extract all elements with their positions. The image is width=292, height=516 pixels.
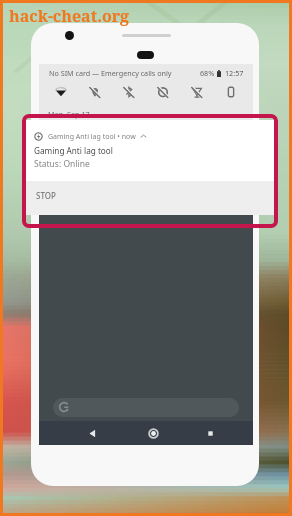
button[interactable]: Auto rotate <box>219 84 243 100</box>
button[interactable]: Google search <box>53 398 239 417</box>
button[interactable]: Do not disturb <box>151 84 175 100</box>
staticText: STOP <box>36 190 56 201</box>
button[interactable]: Home <box>140 421 166 445</box>
staticText: Mon, Sep 17 <box>48 109 90 119</box>
button[interactable]: Cast off <box>185 84 209 100</box>
staticText: No SIM card — Emergency calls only <box>49 68 172 78</box>
staticText: Gaming Anti lag tool <box>34 145 113 156</box>
staticText: Status: Online <box>34 158 90 170</box>
staticText: hack-cheat.org <box>9 5 130 27</box>
button[interactable]: Recents <box>197 421 223 445</box>
button[interactable]: Bluetooth off <box>117 84 141 100</box>
staticText: Gaming Anti lag tool • now <box>48 132 136 142</box>
button[interactable]: Back <box>79 421 105 445</box>
staticText: 12:57 <box>225 68 244 78</box>
staticText: 68% <box>200 68 215 78</box>
button[interactable]: Location off <box>83 84 107 100</box>
button[interactable]: Wi-Fi <box>49 84 73 100</box>
button[interactable]: STOP <box>36 190 56 201</box>
